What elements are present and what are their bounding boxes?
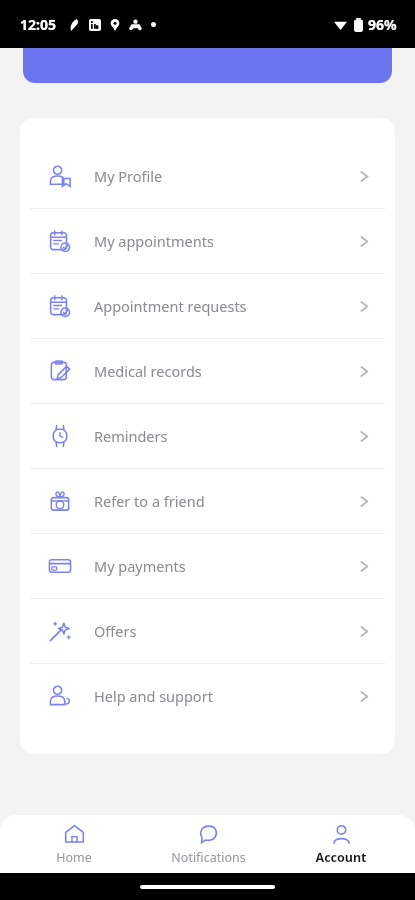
staticText: Home bbox=[56, 849, 92, 866]
staticText: Help and support bbox=[94, 686, 360, 706]
staticText: Appointment requests bbox=[94, 296, 360, 316]
button[interactable]: Home bbox=[14, 817, 134, 872]
staticText: Reminders bbox=[94, 426, 360, 446]
staticText: 96% bbox=[368, 15, 397, 34]
button[interactable]: Refer to a friend bbox=[20, 469, 395, 533]
button[interactable]: Offers bbox=[20, 599, 395, 663]
button[interactable]: Reminders bbox=[20, 404, 395, 468]
other: Account bbox=[331, 824, 352, 845]
staticText: Offers bbox=[94, 621, 360, 641]
staticText: Medical records bbox=[94, 361, 360, 381]
other: Home bbox=[64, 824, 85, 845]
button[interactable]: Notifications bbox=[148, 817, 268, 872]
other: Notifications bbox=[198, 824, 219, 845]
staticText: 12:05 bbox=[20, 15, 56, 34]
button[interactable]: Appointment requests bbox=[20, 274, 395, 338]
button[interactable]: Help and support bbox=[20, 664, 395, 728]
staticText: Refer to a friend bbox=[94, 491, 360, 511]
button[interactable]: Account bbox=[281, 817, 401, 872]
staticText: My Profile bbox=[94, 166, 360, 186]
staticText: My payments bbox=[94, 556, 360, 576]
button[interactable]: Medical records bbox=[20, 339, 395, 403]
button[interactable]: My appointments bbox=[20, 209, 395, 273]
button[interactable] bbox=[23, 48, 392, 83]
staticText: Notifications bbox=[171, 849, 246, 866]
staticText: Account bbox=[315, 849, 367, 866]
staticText: My appointments bbox=[94, 231, 360, 251]
button[interactable]: My Profile bbox=[20, 144, 395, 208]
button[interactable]: My payments bbox=[20, 534, 395, 598]
